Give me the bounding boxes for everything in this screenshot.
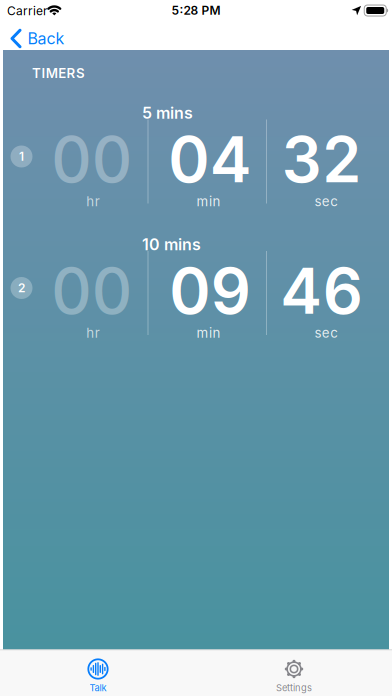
staticText: 5 mins [142, 104, 193, 122]
staticText: Carrier [7, 4, 48, 18]
staticText: 09 [169, 254, 251, 328]
staticText: 00 [51, 254, 132, 328]
staticText: hr [86, 325, 100, 341]
button[interactable]: 10 mins [0, 234, 392, 337]
staticText: 32 [282, 122, 361, 196]
staticText: 2 [18, 281, 25, 295]
button[interactable]: 5 mins [0, 103, 392, 206]
staticText: 10 mins [142, 235, 201, 254]
button[interactable]: Back [10, 29, 64, 48]
staticText: 04 [168, 122, 252, 196]
staticText: Settings [276, 682, 312, 693]
button[interactable]: Talk [0, 649, 196, 696]
staticText: sec [314, 325, 338, 341]
staticText: TIMERS [32, 65, 85, 81]
staticText: hr [86, 193, 100, 209]
staticText: 1 [19, 149, 24, 164]
staticText: Back [27, 29, 64, 48]
staticText: min [197, 325, 220, 341]
staticText: sec [314, 193, 338, 209]
button[interactable]: Settings [196, 649, 392, 696]
staticText: 46 [280, 254, 363, 328]
staticText: 00 [51, 122, 132, 196]
staticText: min [197, 193, 220, 209]
staticText: Talk [89, 682, 106, 693]
staticText: 5:28 PM [171, 3, 220, 18]
